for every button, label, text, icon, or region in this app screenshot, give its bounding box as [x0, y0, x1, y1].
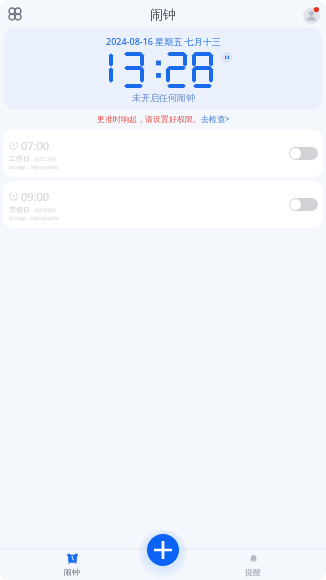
button[interactable]: 09:00 — [3, 181, 323, 228]
button[interactable]: 更准时响起，请设置好权限。去检查> — [0, 113, 326, 124]
staticText: 更准时响起，请设置好权限。去检查> — [97, 113, 230, 124]
button[interactable]: 提醒 — [228, 553, 278, 577]
staticText: 法定工作日 — [34, 157, 57, 163]
staticText: 贴心提醒：节假日自动跳过 — [9, 165, 60, 170]
staticText: 未开启任何闹钟 — [132, 92, 195, 103]
button[interactable]: 07:00 — [3, 130, 323, 177]
staticText: 07:00 — [21, 138, 50, 153]
staticText: 贴心提醒：节假日自动跳过 — [9, 216, 60, 221]
staticText: 节假日 — [9, 205, 30, 214]
button[interactable]: Account — [301, 4, 322, 25]
staticText: 2024-08-16 星期五 七月十三 — [106, 35, 221, 47]
staticText: 法定节假日 — [34, 208, 57, 214]
button[interactable]: Toggle alarm — [289, 147, 318, 160]
staticText: 工作日 — [9, 154, 30, 163]
staticText: 提醒 — [245, 567, 261, 577]
button[interactable]: Apps — [5, 4, 25, 24]
staticText: 闹钟 — [150, 6, 176, 22]
button[interactable]: 闹钟 — [47, 553, 97, 577]
staticText: 闹钟 — [64, 567, 80, 577]
staticText: 09:00 — [21, 189, 50, 204]
button[interactable]: Toggle alarm — [289, 198, 318, 211]
button[interactable]: Add alarm — [147, 534, 179, 566]
